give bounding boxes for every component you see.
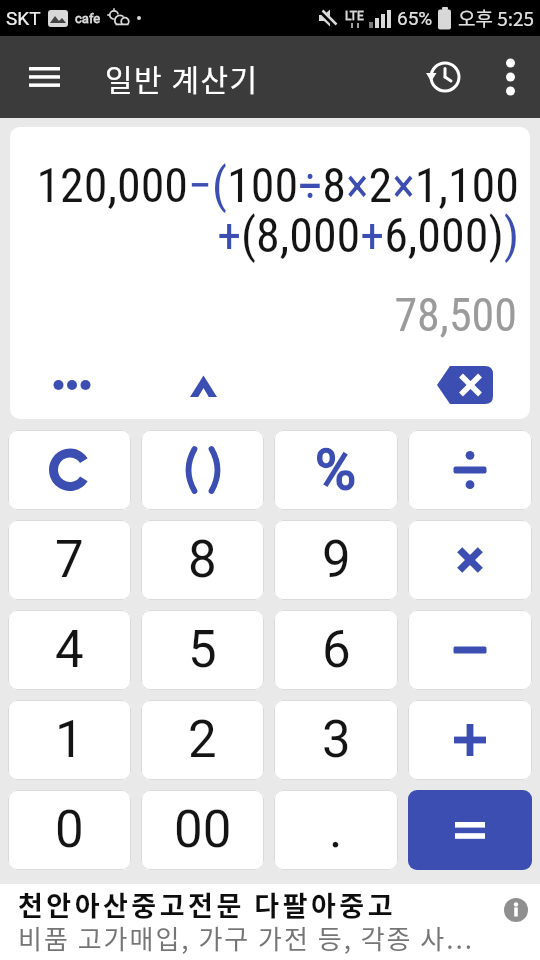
staticText: 비품 고가매입, 가구 가전 등, 각종 사...	[18, 919, 474, 955]
button[interactable]	[408, 430, 532, 510]
button[interactable]: 0	[8, 790, 131, 870]
button[interactable]: %	[274, 430, 398, 510]
button[interactable]	[436, 363, 494, 407]
staticText: 8	[188, 530, 217, 590]
staticText: 2	[188, 710, 217, 770]
staticText: 5	[188, 620, 217, 680]
button[interactable]: 8	[141, 520, 264, 600]
staticText: .	[329, 800, 343, 860]
staticText: 4	[55, 620, 84, 680]
staticText: 일반 계산기	[105, 56, 259, 99]
staticText: 오후 5:25	[458, 4, 535, 32]
button[interactable]: .	[274, 790, 398, 870]
button[interactable]	[502, 55, 518, 99]
staticText: 0	[55, 800, 84, 860]
staticText: 7	[55, 530, 84, 590]
button[interactable]	[28, 61, 60, 93]
staticText: LTE	[345, 9, 364, 23]
staticText: 65%	[397, 7, 433, 29]
button[interactable]: 1	[8, 700, 131, 780]
staticText: 9	[322, 530, 351, 590]
staticText: 6	[322, 620, 351, 680]
staticText: %	[315, 437, 357, 503]
button[interactable]	[408, 790, 532, 870]
button[interactable]	[408, 610, 532, 690]
button[interactable]: 4	[8, 610, 131, 690]
button[interactable]: 3	[274, 700, 398, 780]
button[interactable]	[185, 368, 221, 402]
button[interactable]: 00	[141, 790, 264, 870]
button[interactable]: 5	[141, 610, 264, 690]
button[interactable]: 9	[274, 520, 398, 600]
button[interactable]	[141, 430, 264, 510]
staticText: 1	[55, 710, 84, 770]
button[interactable]	[52, 370, 94, 400]
staticText: 00	[174, 800, 232, 860]
button[interactable]: 천안아산중고전문 다팔아중고	[0, 884, 540, 960]
button[interactable]	[8, 430, 131, 510]
staticText: 78,500	[10, 288, 517, 342]
button[interactable]	[408, 520, 532, 600]
button[interactable]	[408, 700, 532, 780]
button[interactable]	[426, 59, 462, 95]
staticText: 120,000−(100÷8×2×1,100 +(8,000+6,000))	[10, 157, 519, 264]
staticText: cafe	[75, 11, 101, 26]
staticText: 천안아산중고전문 다팔아중고	[18, 885, 397, 924]
staticText: 3	[322, 710, 351, 770]
button[interactable]: 2	[141, 700, 264, 780]
button[interactable]: 6	[274, 610, 398, 690]
staticText: SKT	[6, 7, 41, 29]
button[interactable]: 7	[8, 520, 131, 600]
